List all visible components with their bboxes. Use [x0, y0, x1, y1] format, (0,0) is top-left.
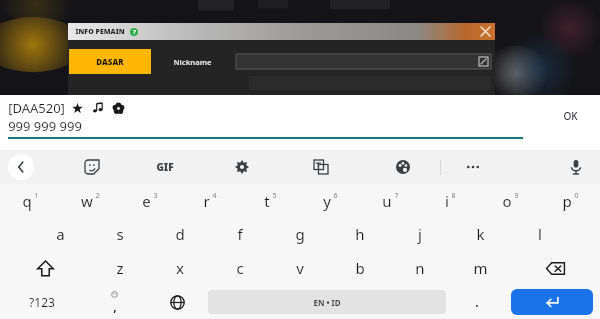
button[interactable]: Voice input [565, 156, 587, 178]
button[interactable]: m [450, 251, 510, 285]
staticText: v [296, 258, 304, 278]
staticText: e [142, 191, 151, 211]
staticText: ? [133, 28, 136, 36]
button[interactable]: Comma and emoji [83, 285, 146, 319]
button[interactable]: x [150, 251, 210, 285]
button[interactable]: e [120, 184, 180, 217]
button[interactable]: Close [475, 23, 495, 40]
button[interactable]: More [464, 158, 482, 176]
button[interactable]: s [90, 217, 150, 251]
staticText: o [502, 191, 512, 211]
button[interactable]: v [270, 251, 330, 285]
button[interactable]: f [210, 217, 270, 251]
button[interactable]: Themes [392, 156, 414, 178]
staticText: u [382, 191, 392, 211]
button[interactable]: b [330, 251, 390, 285]
button[interactable]: h [330, 217, 390, 251]
staticText: 8 [451, 191, 456, 201]
button[interactable]: q [0, 184, 60, 217]
staticText: k [476, 224, 485, 244]
button[interactable]: j [390, 217, 450, 251]
staticText: GIF [156, 160, 174, 174]
staticText: z [116, 258, 124, 278]
staticText: . [475, 294, 479, 310]
staticText: 9 [514, 191, 519, 201]
staticText: 1 [34, 191, 39, 201]
button[interactable]: d [150, 217, 210, 251]
staticText: h [355, 224, 365, 244]
staticText: g [295, 224, 305, 244]
staticText: 5 [272, 191, 277, 201]
button[interactable]: OK [563, 109, 578, 123]
staticText: p [562, 191, 572, 211]
staticText: i [445, 191, 449, 211]
staticText: 2 [95, 191, 100, 201]
button[interactable]: . [446, 285, 508, 319]
button[interactable]: y [300, 184, 360, 217]
staticText: 999 999 999 [8, 117, 82, 135]
button[interactable]: Backspace [510, 251, 600, 285]
staticText: 0 [574, 191, 579, 201]
staticText: 6 [333, 191, 338, 201]
button[interactable]: EN • ID [208, 290, 446, 314]
staticText: ?123 [29, 294, 55, 310]
button[interactable]: w [60, 184, 120, 217]
button[interactable]: Enter [511, 289, 593, 315]
button[interactable]: Back [8, 154, 34, 180]
button[interactable]: a [30, 217, 90, 251]
staticText: EN • ID [313, 297, 341, 308]
button[interactable]: GIF [156, 160, 174, 174]
staticText: OK [563, 109, 578, 123]
staticText: a [56, 224, 65, 244]
button[interactable]: Settings [231, 156, 253, 178]
staticText: m [473, 258, 488, 278]
staticText: j [418, 224, 422, 244]
staticText: d [175, 224, 185, 244]
staticText: 7 [394, 191, 399, 201]
staticText: 3 [153, 191, 158, 201]
button[interactable]: l [510, 217, 570, 251]
staticText: l [538, 224, 542, 244]
button[interactable]: p [540, 184, 600, 217]
button[interactable]: k [450, 217, 510, 251]
staticText: f [237, 224, 243, 244]
staticText: y [323, 191, 331, 211]
staticText: INFO PEMAIN [75, 27, 125, 37]
button[interactable]: Stickers [81, 156, 103, 178]
button[interactable]: t [240, 184, 300, 217]
staticText: , [113, 298, 117, 314]
staticText: w [81, 191, 93, 211]
button[interactable]: ?123 [0, 285, 83, 319]
button[interactable]: g [270, 217, 330, 251]
staticText: b [355, 258, 365, 278]
button[interactable]: Translate [310, 156, 332, 178]
other: Edit nickname [479, 57, 488, 66]
button[interactable]: r [180, 184, 240, 217]
staticText: Nickname [173, 57, 212, 67]
button[interactable]: Help [130, 28, 138, 36]
button[interactable]: i [420, 184, 480, 217]
button[interactable]: Edit nickname [236, 54, 491, 69]
staticText: DASAR [96, 56, 124, 67]
button[interactable]: c [210, 251, 270, 285]
staticText: s [116, 224, 124, 244]
button[interactable]: z [90, 251, 150, 285]
staticText: x [176, 258, 184, 278]
staticText: q [22, 191, 32, 211]
button[interactable]: o [480, 184, 540, 217]
button[interactable]: u [360, 184, 420, 217]
staticText: t [264, 191, 270, 211]
staticText: 4 [212, 191, 217, 201]
staticText: r [203, 191, 210, 211]
staticText: n [415, 258, 425, 278]
staticText: c [236, 258, 244, 278]
button[interactable]: n [390, 251, 450, 285]
button[interactable]: DASAR [69, 49, 151, 74]
button[interactable]: Change language [146, 285, 208, 319]
button[interactable]: Shift [0, 251, 90, 285]
staticText: [DAA520] [8, 99, 65, 117]
